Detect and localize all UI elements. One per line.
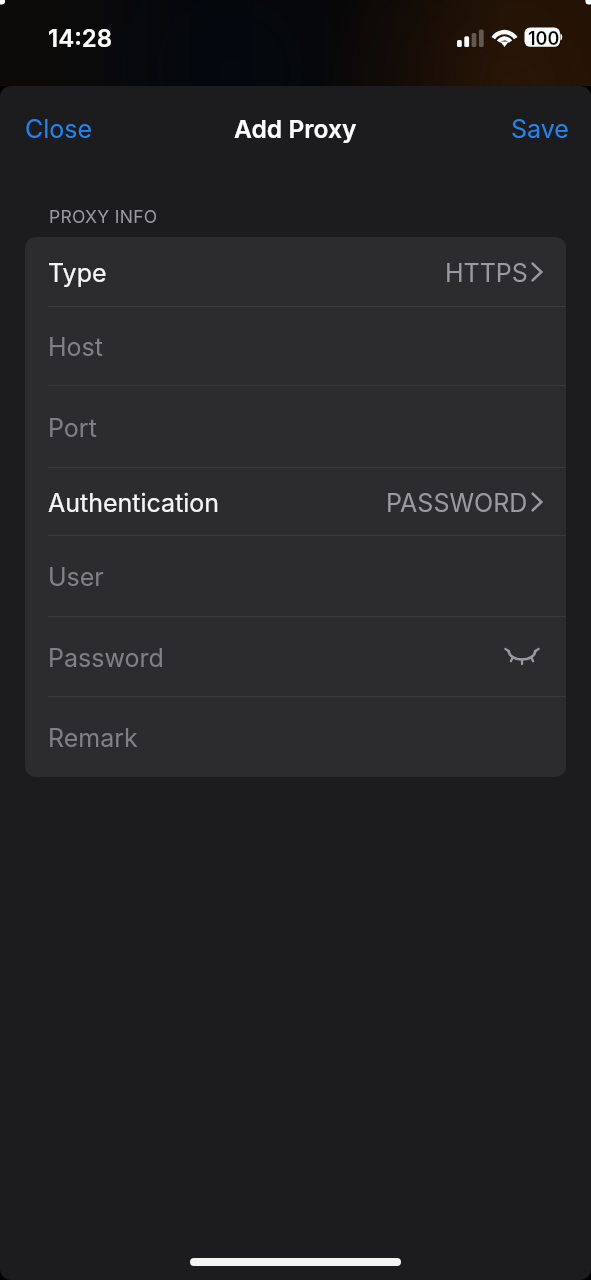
button[interactable]: Close — [13, 105, 105, 153]
button[interactable]: Remark — [25, 697, 566, 777]
staticText: 14:28 — [48, 24, 113, 53]
staticText: Password — [48, 643, 164, 673]
staticText: Host — [48, 332, 103, 362]
staticText: User — [48, 562, 104, 592]
button[interactable]: Host — [25, 307, 566, 385]
staticText: PASSWORD — [386, 488, 528, 518]
staticText: Close — [25, 114, 93, 144]
staticText: Type — [48, 258, 107, 288]
staticText: PROXY INFO — [49, 206, 158, 227]
staticText: 100 — [528, 28, 560, 50]
staticText: Remark — [48, 723, 138, 753]
staticText: Save — [511, 114, 569, 144]
button[interactable]: Port — [25, 386, 566, 467]
button[interactable]: Authentication — [25, 468, 566, 535]
button[interactable]: Type — [25, 237, 566, 306]
button[interactable]: Save — [499, 105, 581, 153]
staticText: Authentication — [48, 488, 220, 518]
button[interactable]: Password — [25, 617, 566, 696]
staticText: Add Proxy — [234, 114, 357, 144]
button[interactable]: Show password — [500, 635, 544, 679]
staticText: Port — [48, 413, 97, 443]
staticText: HTTPS — [445, 258, 528, 288]
button[interactable]: User — [25, 536, 566, 616]
